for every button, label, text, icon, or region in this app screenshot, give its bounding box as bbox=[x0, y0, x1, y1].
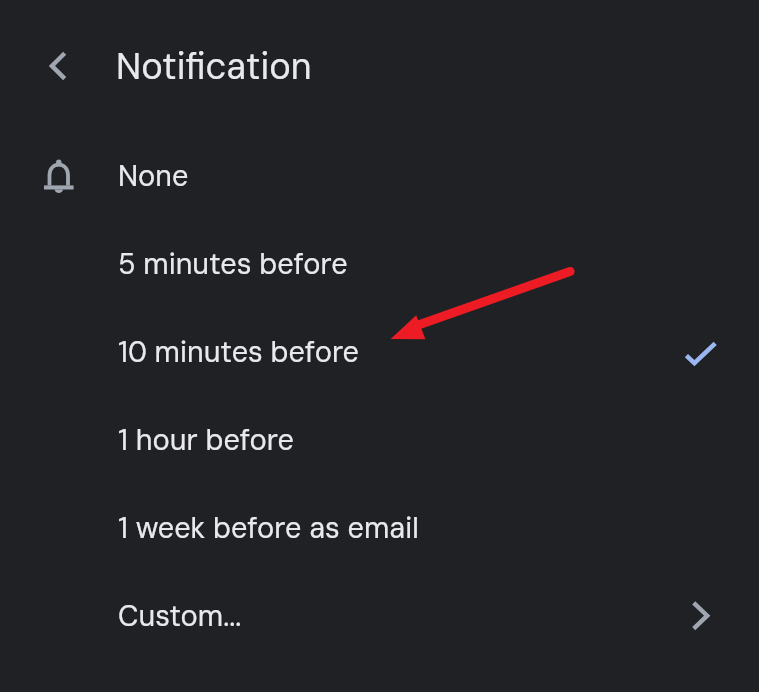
staticText: 10 minutes before bbox=[118, 333, 359, 371]
staticText: Custom... bbox=[118, 597, 242, 635]
button[interactable]: 5 minutes before bbox=[0, 220, 759, 308]
button[interactable]: Open custom bbox=[662, 578, 738, 654]
button[interactable]: Custom... bbox=[0, 572, 759, 660]
button[interactable]: 1 hour before bbox=[0, 396, 759, 484]
button[interactable]: 10 minutes before bbox=[0, 308, 759, 396]
staticText: Notification bbox=[116, 43, 312, 90]
staticText: 1 week before as email bbox=[118, 509, 419, 547]
staticText: 1 hour before bbox=[118, 421, 294, 459]
staticText: None bbox=[118, 157, 189, 195]
button[interactable]: Selected bbox=[662, 314, 738, 390]
button[interactable]: 1 week before as email bbox=[0, 484, 759, 572]
button[interactable]: Back bbox=[13, 22, 101, 110]
button[interactable]: None bbox=[0, 132, 759, 220]
staticText: 5 minutes before bbox=[118, 245, 348, 283]
